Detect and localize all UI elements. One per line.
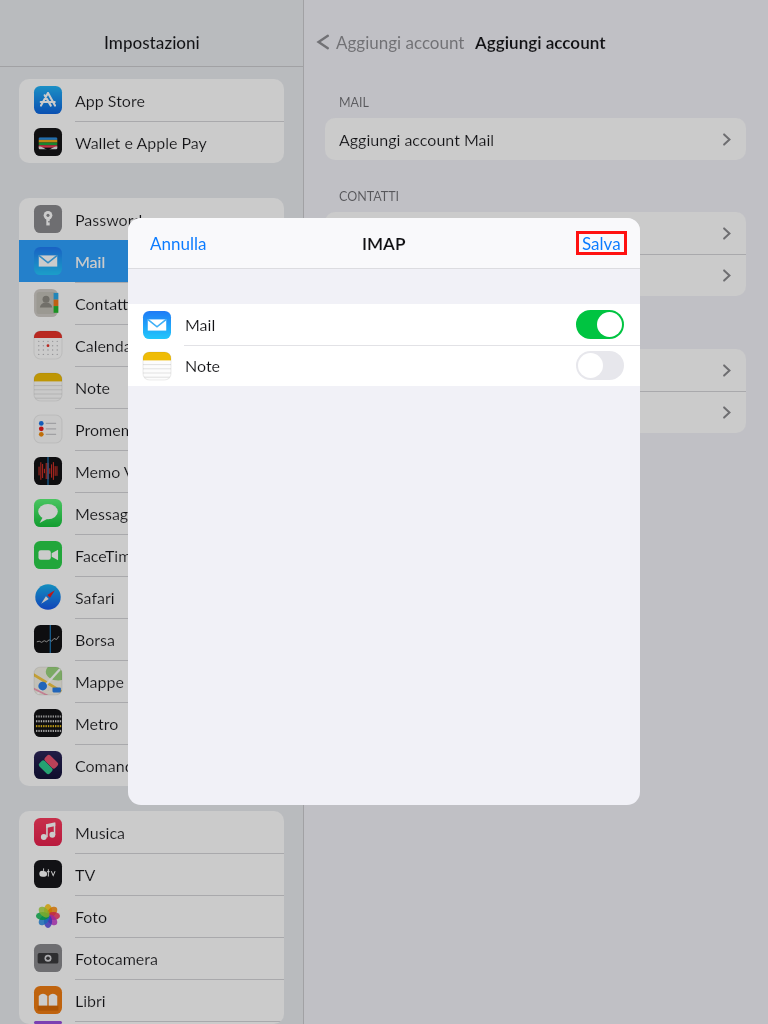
staticText: Messaggi: [75, 504, 141, 523]
staticText: Libri: [75, 991, 106, 1010]
staticText: MAIL: [339, 95, 369, 110]
button[interactable]: Aggiungi account Mail: [325, 118, 746, 160]
staticText: App Store: [75, 91, 145, 110]
button[interactable]: TV: [19, 853, 284, 895]
staticText: Safari: [75, 588, 115, 607]
staticText: Note: [185, 356, 221, 375]
staticText: Password: [75, 210, 143, 229]
staticText: Mail: [185, 315, 216, 334]
button[interactable]: Disattivo: [576, 351, 624, 380]
staticText: Note: [75, 378, 111, 397]
button[interactable]: Wallet e Apple Pay: [19, 121, 284, 163]
button[interactable]: Attivo: [576, 310, 624, 339]
button[interactable]: Mappe: [19, 660, 284, 702]
staticText: Mail: [75, 252, 106, 271]
staticText: TV: [75, 865, 96, 884]
button[interactable]: Metro: [19, 702, 284, 744]
staticText: Impostazioni: [104, 32, 200, 52]
button[interactable]: [325, 391, 746, 433]
button[interactable]: [325, 212, 746, 254]
staticText: Fotocamera: [75, 949, 158, 968]
staticText: Metro: [75, 714, 119, 733]
button[interactable]: Fotocamera: [19, 937, 284, 979]
button[interactable]: Indietro: [312, 31, 334, 53]
button[interactable]: Salva: [582, 233, 621, 253]
staticText: Comandi rapidi: [75, 756, 181, 775]
button[interactable]: Safari: [19, 576, 284, 618]
staticText: IMAP: [362, 233, 406, 253]
button[interactable]: Messaggi: [19, 492, 284, 534]
staticText: Aggiungi account: [336, 32, 465, 52]
button[interactable]: [325, 254, 746, 296]
button[interactable]: Contatti: [19, 282, 284, 324]
staticText: Calendario: [75, 336, 151, 355]
button[interactable]: Musica: [19, 811, 284, 853]
button[interactable]: Foto: [19, 895, 284, 937]
button[interactable]: App Store: [19, 79, 284, 121]
button[interactable]: [325, 349, 746, 391]
staticText: Contatti: [75, 294, 132, 313]
button[interactable]: Memo Vocali: [19, 450, 284, 492]
button[interactable]: Libri: [19, 979, 284, 1021]
button[interactable]: Podcast: [19, 1021, 284, 1024]
button[interactable]: Note: [19, 366, 284, 408]
staticText: Musica: [75, 823, 125, 842]
button[interactable]: FaceTime: [19, 534, 284, 576]
button[interactable]: Promemoria: [19, 408, 284, 450]
staticText: CONTATTI: [339, 189, 400, 204]
button[interactable]: Note: [128, 345, 640, 386]
staticText: Promemoria: [75, 420, 161, 439]
staticText: Aggiungi account: [475, 32, 606, 52]
staticText: Wallet e Apple Pay: [75, 133, 207, 152]
button[interactable]: Comandi rapidi: [19, 744, 284, 786]
staticText: Aggiungi account Mail: [339, 130, 495, 149]
button[interactable]: Borsa: [19, 618, 284, 660]
staticText: FaceTime: [75, 546, 140, 565]
staticText: Borsa: [75, 630, 115, 649]
button[interactable]: Password: [19, 198, 284, 240]
staticText: Foto: [75, 907, 108, 926]
button[interactable]: Mail: [128, 304, 640, 345]
button[interactable]: Annulla: [150, 233, 207, 253]
staticText: Mappe: [75, 672, 124, 691]
button[interactable]: Calendario: [19, 324, 284, 366]
button[interactable]: Mail: [19, 240, 284, 282]
staticText: Memo Vocali: [75, 462, 166, 481]
staticText: Podcast: [75, 1021, 131, 1024]
staticText: Salva: [582, 233, 621, 253]
staticText: Annulla: [150, 233, 207, 253]
